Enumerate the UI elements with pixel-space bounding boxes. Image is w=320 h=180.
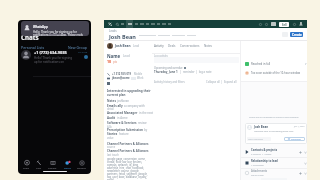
staticText: Jun 1, 2023 4:12 PM xyxy=(294,125,305,128)
staticText: Notes xyxy=(107,99,116,103)
staticText: Camera xyxy=(48,167,57,170)
staticText: Josh Bean xyxy=(115,44,131,48)
staticText: Prescription Submission xyxy=(107,128,143,132)
staticText: Associated Manager xyxy=(107,111,138,115)
staticText: by xyxy=(144,128,148,132)
button[interactable]: Create xyxy=(290,32,303,37)
button[interactable]: +1 (773) 634-9035 xyxy=(21,50,88,63)
button[interactable]: Add xyxy=(299,151,302,154)
staticText: last touch xyxy=(107,153,119,157)
button[interactable]: Comment xyxy=(284,137,305,141)
button[interactable]: Attachments xyxy=(245,168,307,178)
staticText: Relationship to lead xyxy=(251,159,278,163)
staticText: value xyxy=(107,136,114,140)
staticText: Josh Bean xyxy=(109,33,136,40)
button[interactable]: WhatsApp xyxy=(21,21,89,36)
button[interactable]: Help xyxy=(265,23,268,26)
staticText: 4:12 PM xyxy=(78,50,88,53)
staticText: | reminder | log a note xyxy=(180,70,212,74)
staticText: v xyxy=(305,62,307,66)
button[interactable]: New Group xyxy=(68,45,88,50)
button[interactable]: Settings xyxy=(293,23,296,26)
staticText: jbean@acme xyxy=(112,76,130,80)
staticText: Channel Partners & Alliances xyxy=(107,149,149,153)
staticText: Emails ally xyxy=(107,104,123,108)
button[interactable]: Deals xyxy=(168,44,176,48)
button[interactable]: Calls xyxy=(35,160,43,170)
staticText: Create xyxy=(292,33,302,37)
button[interactable]: Reached in full xyxy=(245,62,307,66)
button[interactable]: Chats xyxy=(22,160,31,170)
staticText: Chats xyxy=(21,33,39,41)
staticText: Status xyxy=(64,167,71,170)
staticText: Work xyxy=(137,76,144,80)
button[interactable]: Sell xyxy=(279,22,289,27)
button[interactable]: Expand xyxy=(304,151,307,154)
staticText: There are no activities to show in this … xyxy=(249,116,299,119)
button[interactable]: Search xyxy=(116,23,119,26)
staticText: Name xyxy=(107,53,121,59)
staticText: Comment xyxy=(291,138,301,141)
staticText: Log activity xyxy=(154,54,168,58)
staticText: Add a comment xyxy=(247,138,263,141)
button[interactable]: Add a comment xyxy=(247,137,271,141)
staticText: Chats xyxy=(23,167,30,170)
button[interactable]: +1 312 555 019 xyxy=(107,72,143,76)
staticText: +1 312 555 019 xyxy=(112,72,132,76)
button[interactable]: Josh Bean xyxy=(107,43,140,49)
button[interactable]: Status xyxy=(63,160,72,170)
button[interactable]: Notes xyxy=(204,44,213,48)
staticText: Audit xyxy=(107,116,116,120)
staticText: in the next xyxy=(139,111,153,115)
button[interactable]: Expand xyxy=(304,172,307,175)
button[interactable]: jbean@acme xyxy=(107,76,144,80)
button[interactable]: Settings xyxy=(76,160,87,170)
button[interactable]: Apps xyxy=(271,22,276,26)
staticText: review xyxy=(138,121,147,125)
button[interactable]: Notifications xyxy=(259,23,262,26)
staticText: Calls xyxy=(36,167,42,170)
button[interactable]: Activity xyxy=(154,44,164,48)
staticText: 3 contacts + 2 deals xyxy=(251,153,272,156)
staticText: Lead xyxy=(133,44,140,48)
staticText: Thursday, June 1 xyxy=(154,70,178,74)
button[interactable]: Camera xyxy=(47,160,58,170)
button[interactable] xyxy=(126,20,133,28)
button[interactable]: Conversations xyxy=(180,44,200,48)
staticText: 1 association xyxy=(251,164,264,167)
staticText: Channel Partners & Alliances xyxy=(107,142,149,146)
staticText: Hello, Thank you for signing up for noti… xyxy=(33,30,87,36)
staticText: Interested in upgrading their current pl… xyxy=(107,89,151,97)
staticText: google page, conversion, acme, crowd, fl… xyxy=(107,157,151,180)
button[interactable]: Relationship to lead xyxy=(245,158,307,168)
staticText: Lead xyxy=(123,54,130,58)
button[interactable]: Account xyxy=(299,22,303,26)
staticText: WhatsApp xyxy=(33,25,48,29)
staticText: Message sent to joshbean@acme.com xyxy=(254,130,294,133)
staticText: Reached in full xyxy=(251,62,271,66)
button[interactable]: Add xyxy=(299,172,302,175)
staticText: b2b xyxy=(107,125,112,129)
button[interactable]: Home xyxy=(108,22,112,26)
staticText: in Acme xyxy=(117,116,128,120)
staticText: 10 xyxy=(107,59,112,64)
button[interactable]: Personal Lists xyxy=(21,45,45,50)
staticText: joshbean xyxy=(117,99,130,103)
staticText: +1 (773) 634-9035 xyxy=(34,50,67,55)
button[interactable]: Expand xyxy=(304,162,307,165)
staticText: Software & Services xyxy=(107,121,137,125)
button[interactable]: Too soon outside of the 10-hour window xyxy=(245,71,307,75)
button[interactable]: Contacts & projects xyxy=(245,147,307,157)
staticText: source xyxy=(107,145,116,149)
staticText: Attachments xyxy=(251,169,268,173)
